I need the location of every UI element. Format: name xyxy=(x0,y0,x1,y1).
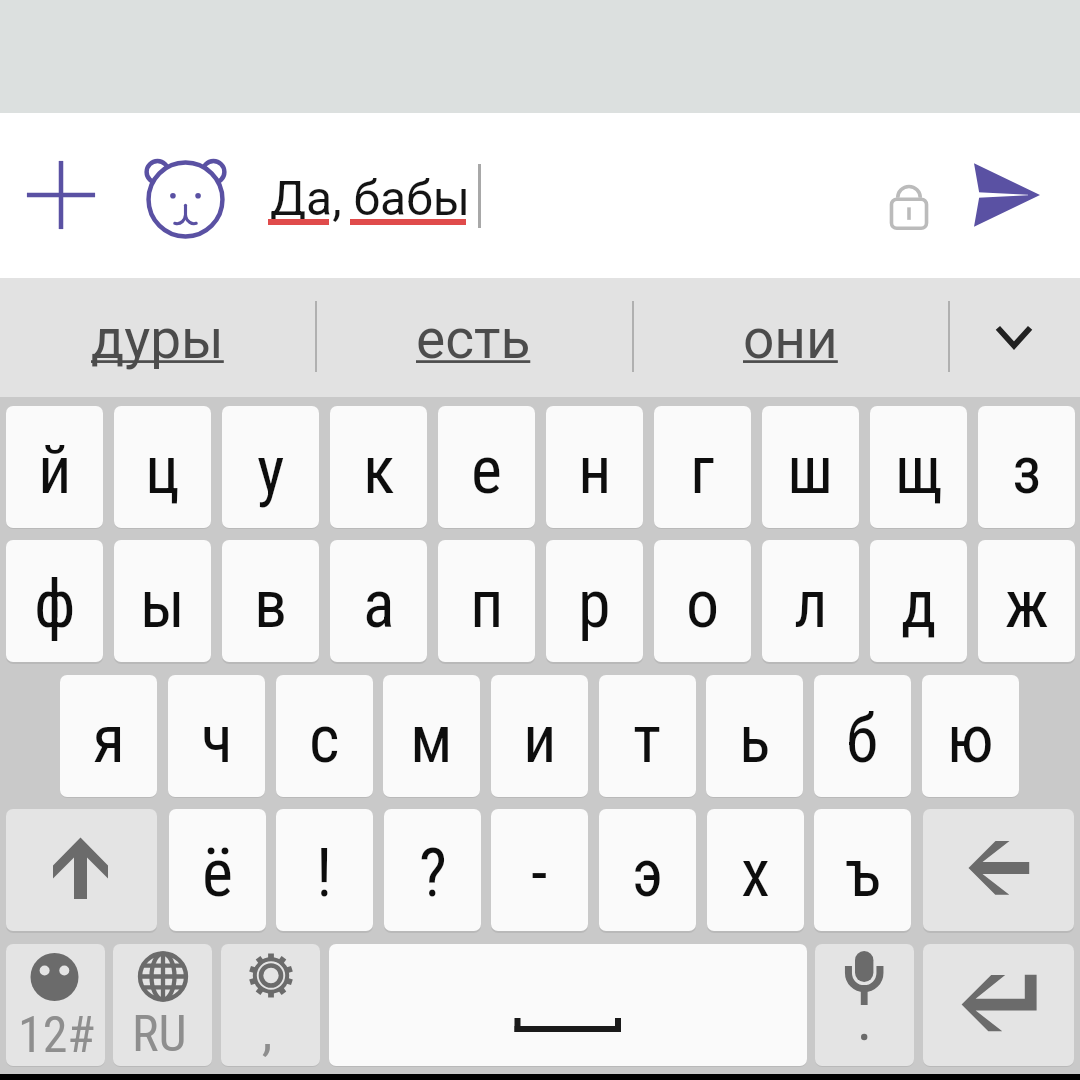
staticText: ь xyxy=(739,701,771,778)
button[interactable]: Shift xyxy=(6,809,157,931)
button[interactable]: ! xyxy=(276,809,373,931)
button[interactable]: а xyxy=(330,540,427,662)
button[interactable]: ? xyxy=(384,809,481,931)
staticText: г xyxy=(690,432,715,509)
staticText: к xyxy=(363,432,395,509)
button[interactable]: м xyxy=(383,675,480,797)
staticText: ы xyxy=(140,566,185,643)
button[interactable]: г xyxy=(654,406,751,528)
button[interactable]: э xyxy=(599,809,696,931)
button[interactable]: Encrypted xyxy=(873,168,945,240)
button[interactable]: дуры xyxy=(7,278,307,397)
button[interactable]: Add xyxy=(1,135,121,255)
staticText: ж xyxy=(1005,566,1049,643)
staticText: й xyxy=(38,432,72,509)
button[interactable]: к xyxy=(330,406,427,528)
staticText: х xyxy=(741,835,770,912)
staticText: ф xyxy=(34,566,76,643)
button[interactable]: ф xyxy=(6,540,103,662)
staticText: д xyxy=(901,566,937,643)
button[interactable]: ю xyxy=(922,675,1019,797)
staticText: и xyxy=(523,701,557,778)
staticText: , xyxy=(262,1002,273,1063)
button[interactable]: о xyxy=(654,540,751,662)
button[interactable]: Space xyxy=(329,944,807,1066)
button[interactable]: л xyxy=(762,540,859,662)
button[interactable]: н xyxy=(546,406,643,528)
button[interactable]: и xyxy=(491,675,588,797)
button[interactable]: щ xyxy=(870,406,967,528)
staticText: ч xyxy=(201,701,233,778)
staticText: э xyxy=(632,835,664,912)
button[interactable]: ъ xyxy=(814,809,911,931)
button[interactable]: Stickers xyxy=(125,137,246,258)
staticText: м xyxy=(410,701,453,778)
button[interactable]: ж xyxy=(978,540,1075,662)
button[interactable]: д xyxy=(870,540,967,662)
button[interactable]: б xyxy=(814,675,911,797)
button[interactable]: р xyxy=(546,540,643,662)
button[interactable]: п xyxy=(438,540,535,662)
staticText: р xyxy=(578,566,611,643)
staticText: я xyxy=(93,701,125,778)
staticText: б xyxy=(846,701,879,778)
button[interactable]: у xyxy=(222,406,319,528)
button[interactable]: Voice input xyxy=(815,944,914,1066)
staticText: з xyxy=(1012,432,1042,509)
staticText: ю xyxy=(947,701,994,778)
button[interactable]: Enter xyxy=(923,944,1074,1066)
staticText: Да, бабы xyxy=(270,170,471,226)
button[interactable]: Settings xyxy=(221,944,320,1066)
staticText: ш xyxy=(787,432,834,509)
button[interactable]: ё xyxy=(169,809,266,931)
staticText: у xyxy=(257,432,285,509)
staticText: 12# xyxy=(18,1006,95,1065)
staticText: щ xyxy=(895,432,943,509)
staticText: с xyxy=(309,701,340,778)
staticText: ё xyxy=(202,835,233,912)
button[interactable]: ы xyxy=(114,540,211,662)
button[interactable]: ч xyxy=(168,675,265,797)
staticText: в xyxy=(254,566,288,643)
staticText: ? xyxy=(419,835,447,912)
button[interactable]: ш xyxy=(762,406,859,528)
button[interactable]: т xyxy=(599,675,696,797)
button[interactable]: More suggestions xyxy=(948,278,1080,397)
staticText: RU xyxy=(132,1005,187,1064)
staticText: ! xyxy=(316,835,333,912)
button[interactable]: в xyxy=(222,540,319,662)
button[interactable]: й xyxy=(6,406,103,528)
staticText: т xyxy=(633,701,662,778)
button[interactable]: есть xyxy=(323,278,623,397)
button[interactable]: е xyxy=(438,406,535,528)
button[interactable]: Numbers and symbols xyxy=(6,944,105,1066)
staticText: л xyxy=(794,566,828,643)
staticText: они xyxy=(743,307,838,371)
staticText: ъ xyxy=(845,835,881,912)
button[interactable]: з xyxy=(978,406,1075,528)
staticText: ц xyxy=(145,432,180,509)
staticText: - xyxy=(531,835,548,912)
button[interactable]: Backspace xyxy=(923,809,1074,931)
staticText: а xyxy=(363,566,395,643)
staticText: дуры xyxy=(91,307,224,371)
button[interactable]: х xyxy=(707,809,804,931)
button[interactable]: они xyxy=(640,278,940,397)
staticText: есть xyxy=(416,307,531,371)
staticText: о xyxy=(686,566,720,643)
staticText: н xyxy=(578,432,612,509)
button[interactable]: - xyxy=(491,809,588,931)
staticText: п xyxy=(470,566,504,643)
button[interactable]: ь xyxy=(706,675,803,797)
button[interactable]: Send xyxy=(962,150,1052,240)
button[interactable]: с xyxy=(276,675,373,797)
staticText: е xyxy=(471,432,502,509)
button[interactable]: ц xyxy=(114,406,211,528)
button[interactable]: я xyxy=(60,675,157,797)
button[interactable]: Change language xyxy=(113,944,212,1066)
